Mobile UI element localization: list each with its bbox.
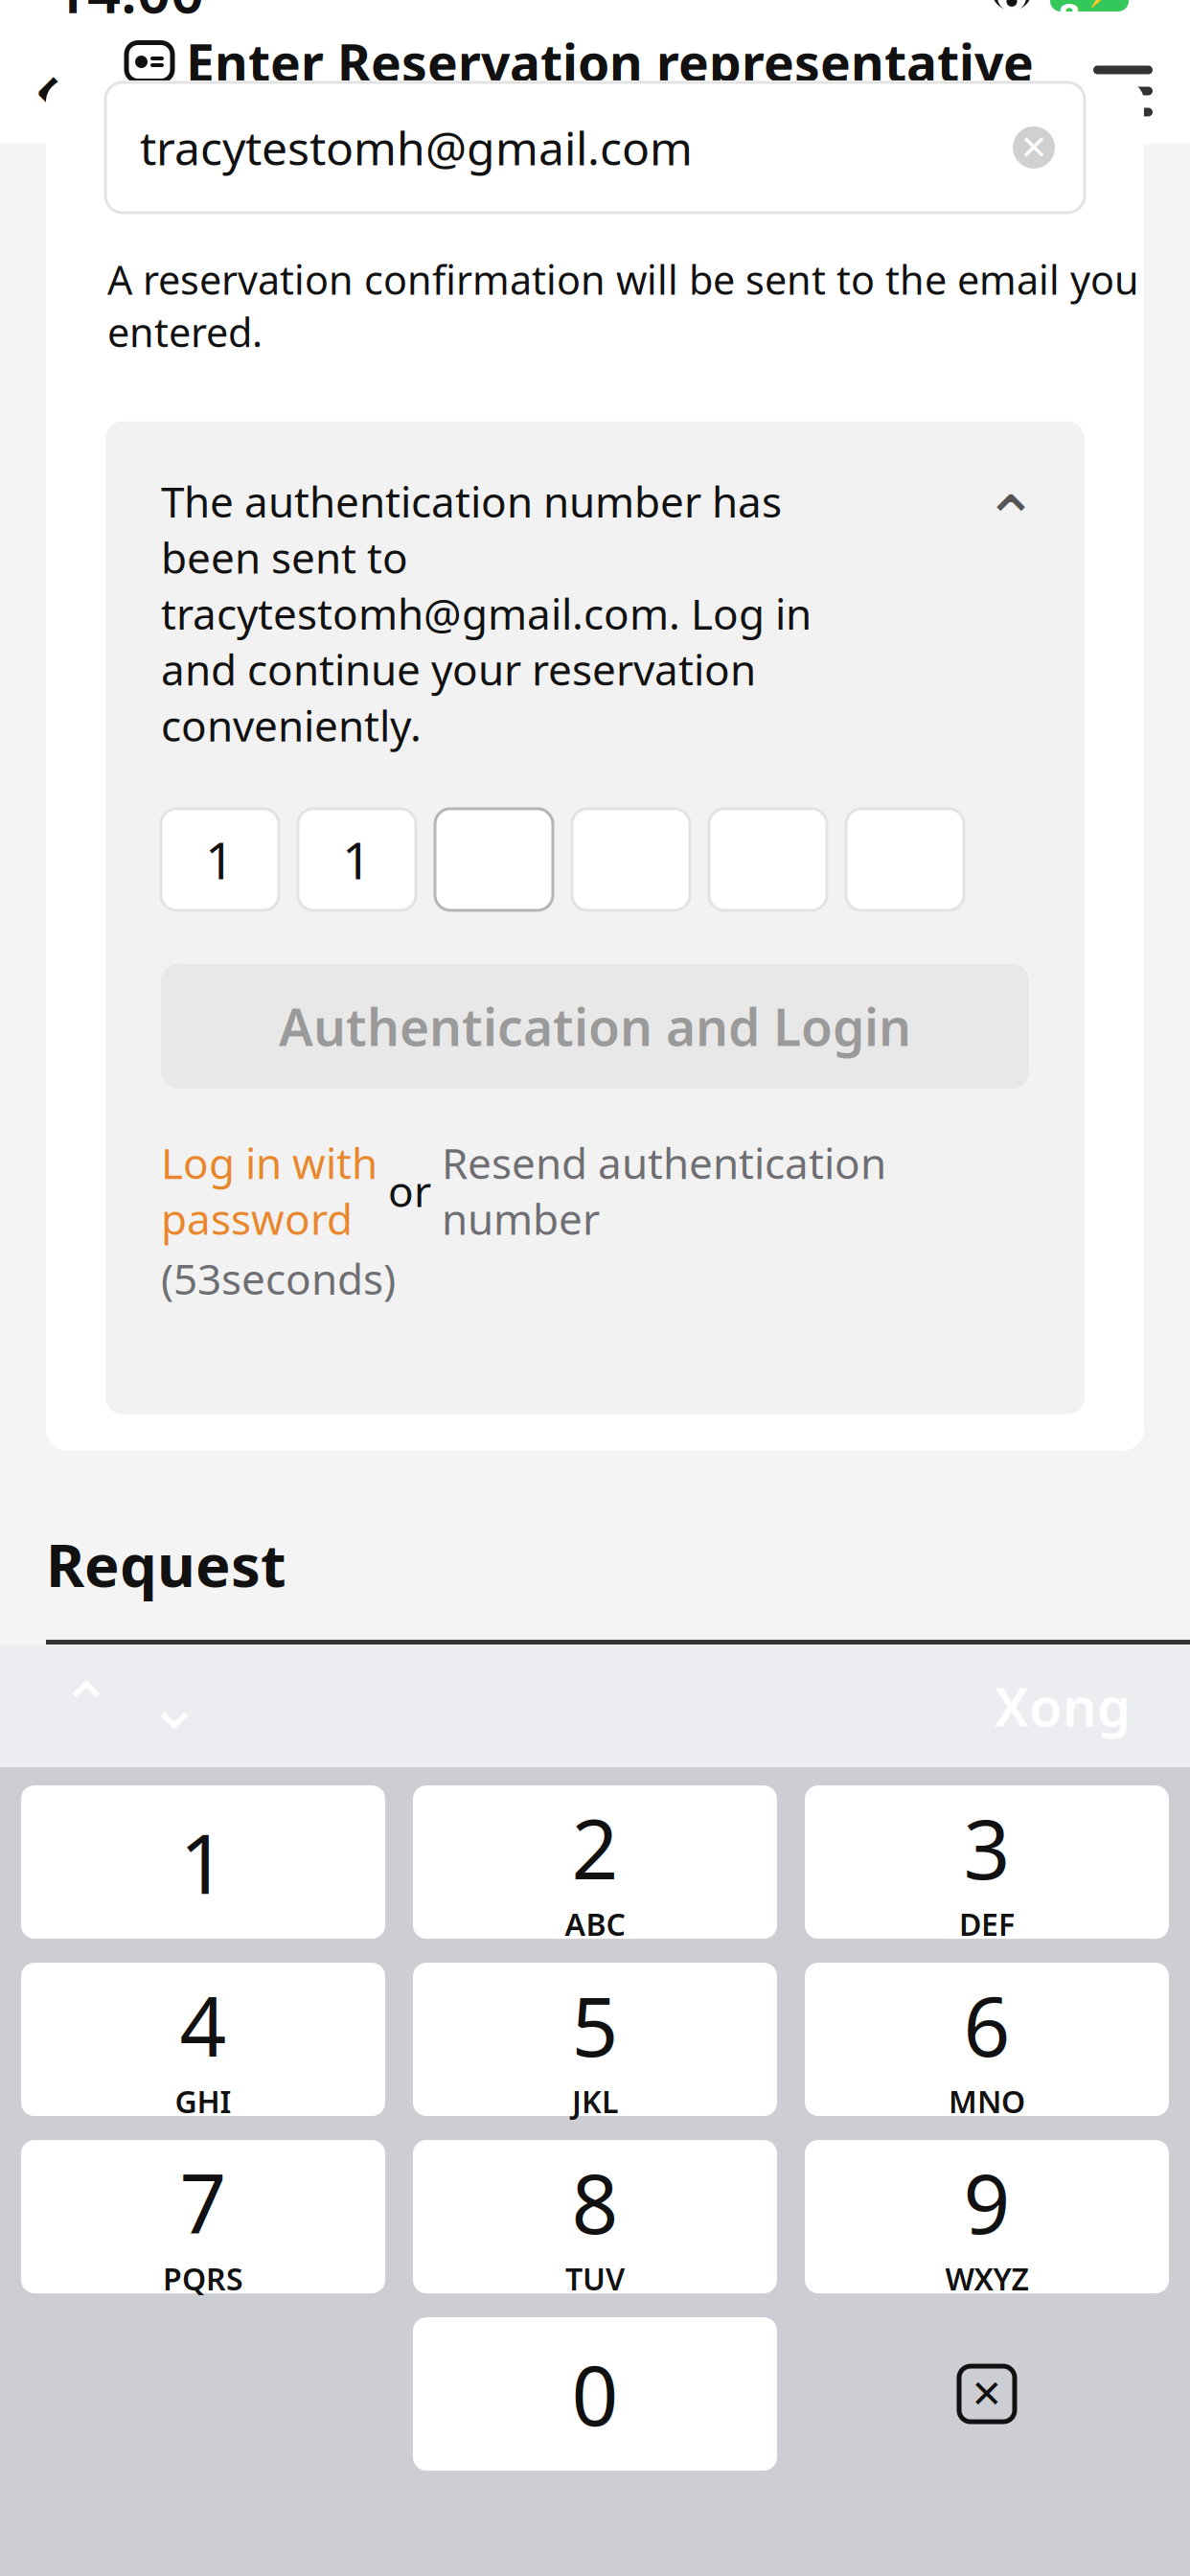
staticText: Enter Reservation representative (186, 28, 1034, 96)
staticText: A reservation confirmation will be sent … (107, 253, 1139, 358)
button[interactable]: Code digit (572, 809, 690, 910)
button[interactable]: 5 (413, 1963, 777, 2116)
staticText: or (378, 1163, 442, 1219)
staticText: MNO (949, 2081, 1025, 2122)
staticText: tracytestomh@gmail.com (140, 117, 693, 178)
button[interactable]: 6 (805, 1963, 1169, 2116)
staticText: 9 (963, 2148, 1010, 2256)
button[interactable]: 0 (413, 2317, 777, 2471)
button[interactable]: Code digit (435, 809, 553, 910)
staticText: TUV (565, 2258, 625, 2299)
button[interactable]: Resend authentication number (442, 1135, 886, 1247)
staticText: ✕ (1020, 129, 1048, 166)
staticText: GHI (175, 2081, 231, 2122)
staticText: Xong (995, 1670, 1131, 1742)
button[interactable]: Clear email (1002, 116, 1065, 179)
staticText: 7 (180, 2148, 227, 2256)
staticText: 14:00 (54, 0, 204, 29)
staticText: 4 (180, 1970, 227, 2079)
staticText: 2 (572, 1793, 618, 1902)
staticText: ⌄ (148, 1670, 201, 1742)
staticText: (53seconds) (161, 1250, 396, 1306)
staticText: 3 (963, 1793, 1010, 1902)
staticText: 11.27 - 11.28( 1 nights), 1 rooms, 2 adu… (132, 101, 900, 154)
staticText: Request (46, 1525, 286, 1603)
button[interactable]: 8 (413, 2140, 777, 2293)
button[interactable]: Collapse (977, 487, 1044, 554)
staticText: ✕ (971, 2372, 1003, 2416)
button[interactable]: Authentication and Login (161, 964, 1029, 1089)
staticText: 8 (572, 2148, 618, 2256)
button[interactable]: Xong (977, 1662, 1148, 1750)
button[interactable]: Back (21, 45, 113, 137)
staticText: 5 (572, 1970, 618, 2079)
staticText: DEF (959, 1904, 1015, 1944)
staticText: ABC (565, 1904, 625, 1944)
staticText: 0 (572, 2340, 618, 2448)
button[interactable]: 3 (805, 1785, 1169, 1939)
button[interactable]: Code digit (161, 809, 279, 910)
staticText: ⌃ (59, 1670, 113, 1742)
staticText: 6 (963, 1970, 1010, 2079)
button[interactable]: 9 (805, 2140, 1169, 2293)
staticText: ⌃ (983, 482, 1039, 558)
button[interactable]: 7 (21, 2140, 385, 2293)
staticText: 1 (180, 1808, 227, 1916)
button[interactable]: 2 (413, 1785, 777, 1939)
button[interactable]: 4 (21, 1963, 385, 2116)
staticText: PQRS (163, 2258, 243, 2299)
staticText: Authentication and Login (279, 992, 911, 1060)
staticText: Resend authentication number (442, 1135, 886, 1247)
button[interactable]: 1 (21, 1785, 385, 1939)
button[interactable]: Code digit (709, 809, 827, 910)
staticText: ← (35, 48, 99, 135)
button[interactable]: Code digit (298, 809, 416, 910)
staticText: 98 (1058, 0, 1080, 41)
button[interactable]: Menu (1077, 45, 1169, 137)
staticText: JKL (572, 2081, 618, 2122)
staticText: Log in with password (161, 1135, 378, 1247)
staticText: The authentication number has been sent … (161, 473, 812, 753)
staticText: 1 (342, 826, 372, 893)
button[interactable]: Log in with password (161, 1135, 378, 1247)
staticText: WXYZ (945, 2258, 1029, 2299)
staticText: 1 (205, 826, 235, 893)
staticText: ⚡ (1082, 0, 1121, 8)
button[interactable]: Delete (805, 2317, 1169, 2471)
button[interactable]: Code digit (846, 809, 964, 910)
